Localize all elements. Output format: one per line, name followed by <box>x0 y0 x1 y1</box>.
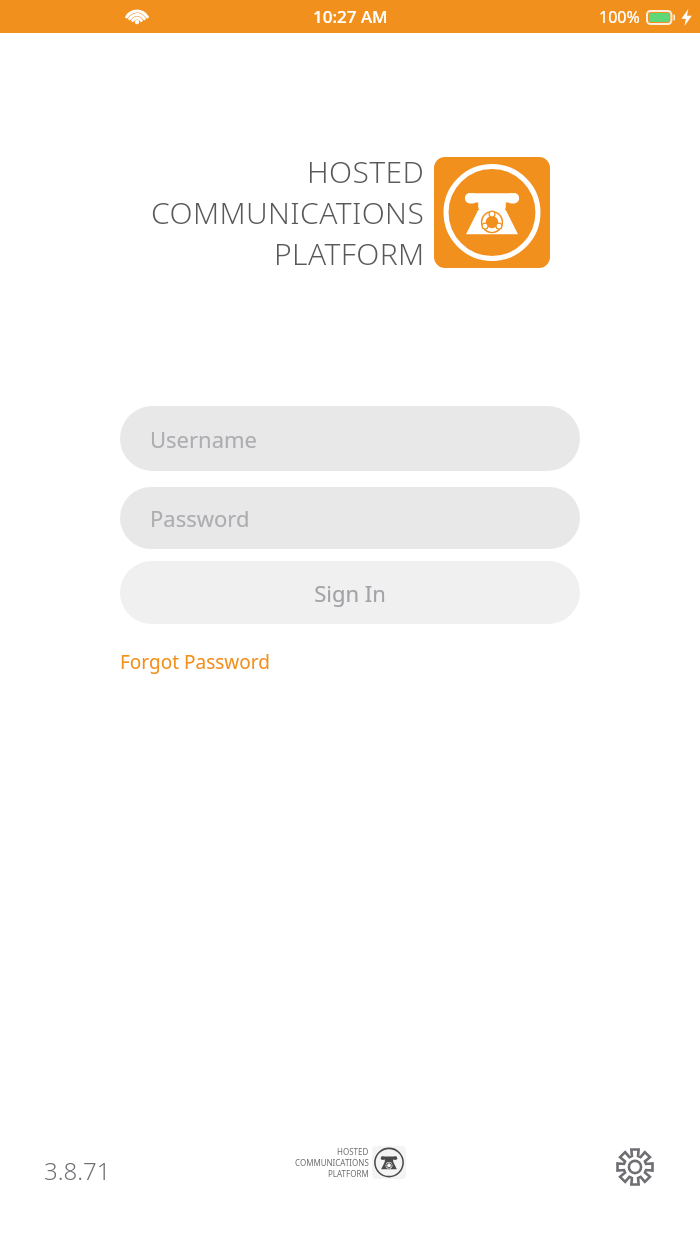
staticText: PLATFORM <box>274 233 425 274</box>
staticText: COMMUNICATIONS <box>151 192 425 233</box>
staticText: Password <box>150 503 250 533</box>
staticText: Username <box>150 424 258 454</box>
button[interactable]: Username <box>120 406 580 471</box>
button[interactable]: Sign In <box>120 561 580 624</box>
staticText: HOSTED <box>337 1146 369 1157</box>
button[interactable]: Password <box>120 487 580 549</box>
staticText: COMMUNICATIONS <box>295 1157 369 1168</box>
staticText: 3.8.71 <box>44 1154 111 1187</box>
staticText: 10:27 AM <box>313 5 388 28</box>
button[interactable]: Forgot Password <box>120 646 270 678</box>
staticText: Sign In <box>314 578 386 608</box>
staticText: Forgot Password <box>120 649 270 675</box>
staticText: PLATFORM <box>328 1168 369 1179</box>
staticText: 100% <box>599 6 640 28</box>
button[interactable]: Settings <box>612 1144 658 1190</box>
staticText: HOSTED <box>307 151 425 192</box>
